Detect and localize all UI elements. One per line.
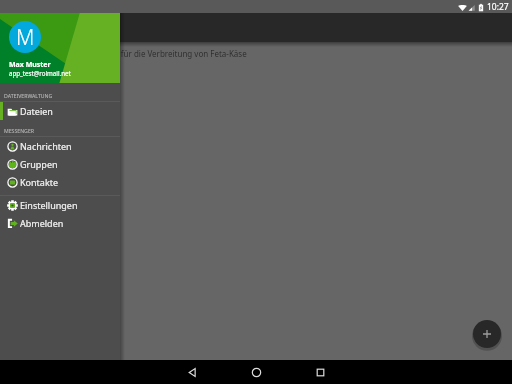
staticText: app_test@rolmail.net — [9, 69, 71, 77]
staticText: Das ist ein ganz wichtiger Grund für die… — [0, 48, 247, 59]
button[interactable]: Abmelden — [0, 214, 120, 232]
staticText: Max Muster — [9, 60, 51, 70]
staticText: M — [16, 23, 35, 52]
button[interactable]: Gruppen — [0, 155, 120, 173]
staticText: Nachrichten — [20, 140, 72, 152]
button[interactable]: Dateien — [0, 102, 120, 120]
button[interactable]: Einstellungen — [0, 196, 120, 214]
staticText: Abmelden — [20, 217, 64, 229]
button[interactable]: Übersicht — [288, 360, 352, 384]
button[interactable]: Kontakte — [0, 173, 120, 191]
staticText: Gruppen — [20, 158, 58, 170]
button[interactable]: Nachrichten — [0, 137, 120, 155]
button[interactable]: Zurück — [160, 360, 224, 384]
staticText: Kontakte — [20, 176, 59, 188]
staticText: DATEIVERWALTUNG — [4, 92, 53, 99]
staticText: 10:27 — [487, 1, 509, 13]
staticText: Einstellungen — [20, 199, 78, 211]
staticText: MESSENGER — [4, 127, 34, 134]
button[interactable]: Startbildschirm — [224, 360, 288, 384]
staticText: Dateien — [20, 105, 53, 117]
button[interactable]: Neu erstellen — [473, 320, 501, 348]
